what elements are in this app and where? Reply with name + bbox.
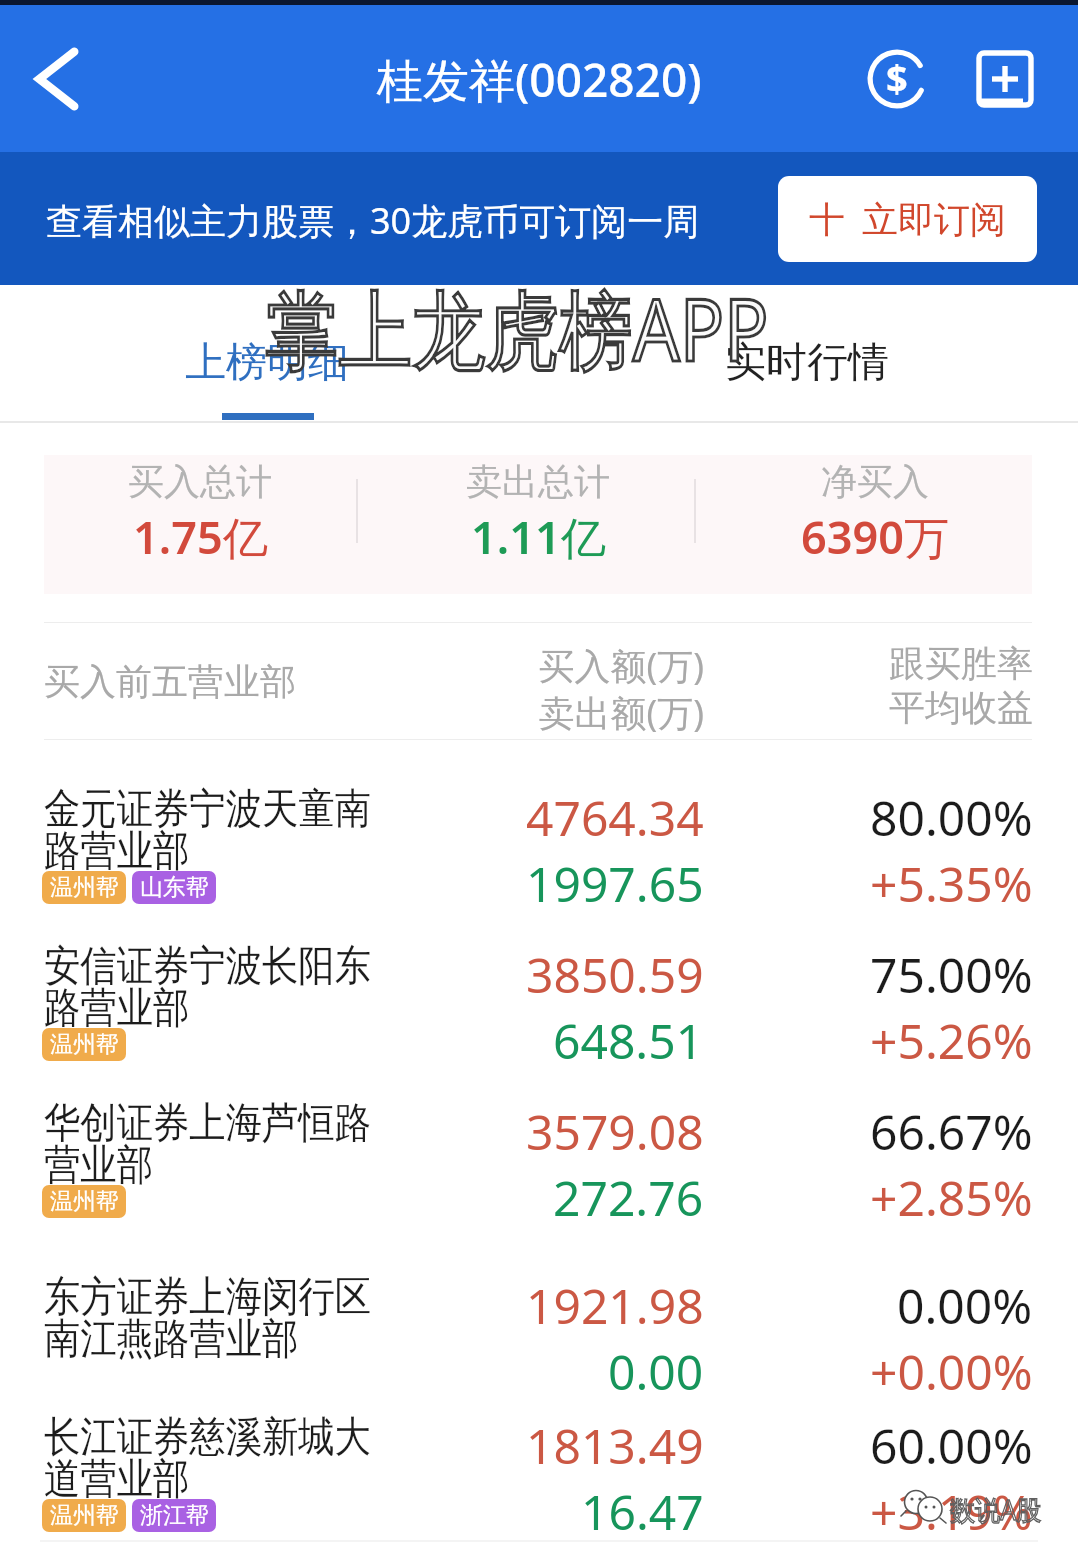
staticText: 3579.08 <box>526 1099 704 1164</box>
staticText: 浙江帮 <box>140 1501 209 1530</box>
staticText: 1.75亿 <box>133 506 268 567</box>
staticText: +3.19% <box>870 1479 1033 1544</box>
staticText: 温州帮 <box>50 1501 119 1530</box>
button[interactable]: 安信证券宁波长阳东 路营业部 <box>0 897 1078 1054</box>
staticText: 1997.65 <box>526 851 704 916</box>
staticText: 桂发祥(002820) <box>377 48 702 111</box>
staticText: 查看相似主力股票，30龙虎币可订阅一周 <box>46 196 700 245</box>
button[interactable]: 金元证券宁波天童南 路营业部 <box>0 740 1078 897</box>
staticText: +2.85% <box>870 1165 1033 1230</box>
button[interactable]: Back <box>10 31 106 127</box>
staticText: 648.51 <box>553 1008 704 1073</box>
button[interactable]: Add <box>957 31 1053 127</box>
staticText: 净买入 <box>821 459 929 504</box>
staticText: +5.35% <box>870 851 1033 916</box>
staticText: 1813.49 <box>526 1413 704 1478</box>
staticText: 3850.59 <box>526 942 704 1007</box>
staticText: 卖出总计 <box>466 459 610 504</box>
staticText: 买入前五营业部 <box>44 659 296 704</box>
staticText: 立即订阅 <box>862 197 1006 242</box>
staticText: +0.00% <box>870 1339 1033 1404</box>
button[interactable]: 长江证券慈溪新城大 道营业部 <box>0 1368 1078 1525</box>
button[interactable]: Cost <box>849 31 945 127</box>
staticText: 75.00% <box>870 942 1033 1007</box>
staticText: 80.00% <box>870 785 1033 850</box>
staticText: 华创证券上海芦恒路 营业部 <box>44 1097 371 1192</box>
staticText: 安信证券宁波长阳东 路营业部 <box>44 940 371 1035</box>
staticText: 66.67% <box>870 1099 1033 1164</box>
button[interactable]: 十 <box>778 176 1037 262</box>
staticText: 东方证券上海闵行区 南江燕路营业部 <box>44 1271 371 1366</box>
staticText: 16.47 <box>581 1479 704 1544</box>
staticText: +5.26% <box>870 1008 1033 1073</box>
button[interactable]: 华创证券上海芦恒路 营业部 <box>0 1054 1078 1211</box>
staticText: 6390万 <box>801 506 949 567</box>
staticText: 金元证券宁波天童南 路营业部 <box>44 783 371 878</box>
staticText: 温州帮 <box>50 873 119 902</box>
staticText: 买入额(万) 卖出额(万) <box>374 641 704 736</box>
button[interactable]: 东方证券上海闵行区 南江燕路营业部 <box>0 1211 1078 1368</box>
staticText: 4764.34 <box>526 785 704 850</box>
staticText: 272.76 <box>553 1165 704 1230</box>
staticText: 十 <box>809 197 845 242</box>
staticText: 买入总计 <box>128 459 272 504</box>
staticText: 0.00 <box>608 1339 704 1404</box>
staticText: 温州帮 <box>50 1030 119 1059</box>
staticText: 1.11亿 <box>471 506 606 567</box>
button[interactable]: 上榜明细 <box>185 337 349 389</box>
button[interactable]: 实时行情 <box>725 337 889 389</box>
staticText: 1921.98 <box>526 1273 704 1338</box>
staticText: 0.00% <box>897 1273 1033 1338</box>
staticText: $ <box>886 52 908 104</box>
staticText: 跟买胜率 平均收益 <box>733 641 1033 731</box>
staticText: 温州帮 <box>50 1187 119 1216</box>
staticText: 实时行情 <box>725 337 889 389</box>
staticText: 山东帮 <box>140 873 209 902</box>
staticText: 60.00% <box>870 1413 1033 1478</box>
staticText: 长江证券慈溪新城大 道营业部 <box>44 1411 371 1506</box>
staticText: 上榜明细 <box>185 337 349 389</box>
